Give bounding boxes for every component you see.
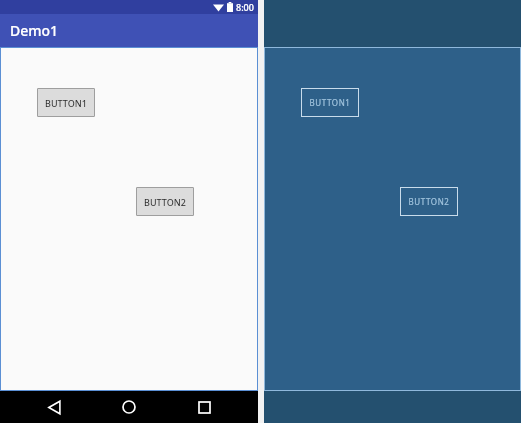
button[interactable]: Recent apps	[183, 391, 225, 423]
button[interactable]: BUTTON2	[402, 189, 456, 214]
button[interactable]: BUTTON2	[136, 187, 194, 216]
staticText: BUTTON2	[408, 196, 450, 207]
staticText: BUTTON2	[144, 196, 186, 208]
button[interactable]: BUTTON1	[303, 90, 357, 115]
button[interactable]: BUTTON1	[37, 88, 95, 117]
button[interactable]: Home	[108, 391, 150, 423]
button[interactable]: Demo1	[0, 14, 258, 47]
button[interactable]: Back	[33, 391, 75, 423]
staticText: BUTTON1	[309, 97, 351, 108]
staticText: Demo1	[10, 21, 59, 40]
staticText: BUTTON1	[45, 97, 87, 109]
staticText: 8:00	[236, 1, 254, 13]
